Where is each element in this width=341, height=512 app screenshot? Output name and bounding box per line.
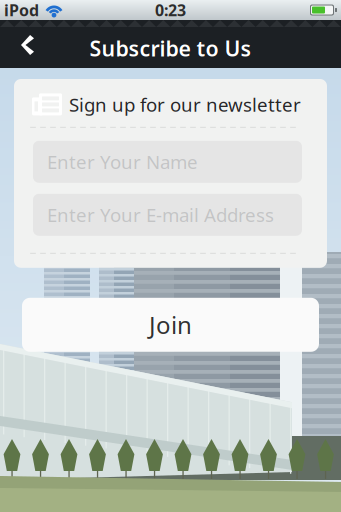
- staticText: Enter Your Name: [47, 149, 198, 174]
- staticText: Subscribe to Us: [89, 34, 251, 62]
- staticText: iPod: [4, 0, 39, 21]
- staticText: Join: [149, 309, 192, 341]
- button[interactable]: Join: [22, 298, 319, 352]
- button[interactable]: Back: [0, 22, 48, 68]
- staticText: Enter Your E-mail Address: [47, 202, 274, 227]
- staticText: 0:23: [155, 0, 186, 21]
- staticText: Sign up for our newsletter: [69, 92, 301, 117]
